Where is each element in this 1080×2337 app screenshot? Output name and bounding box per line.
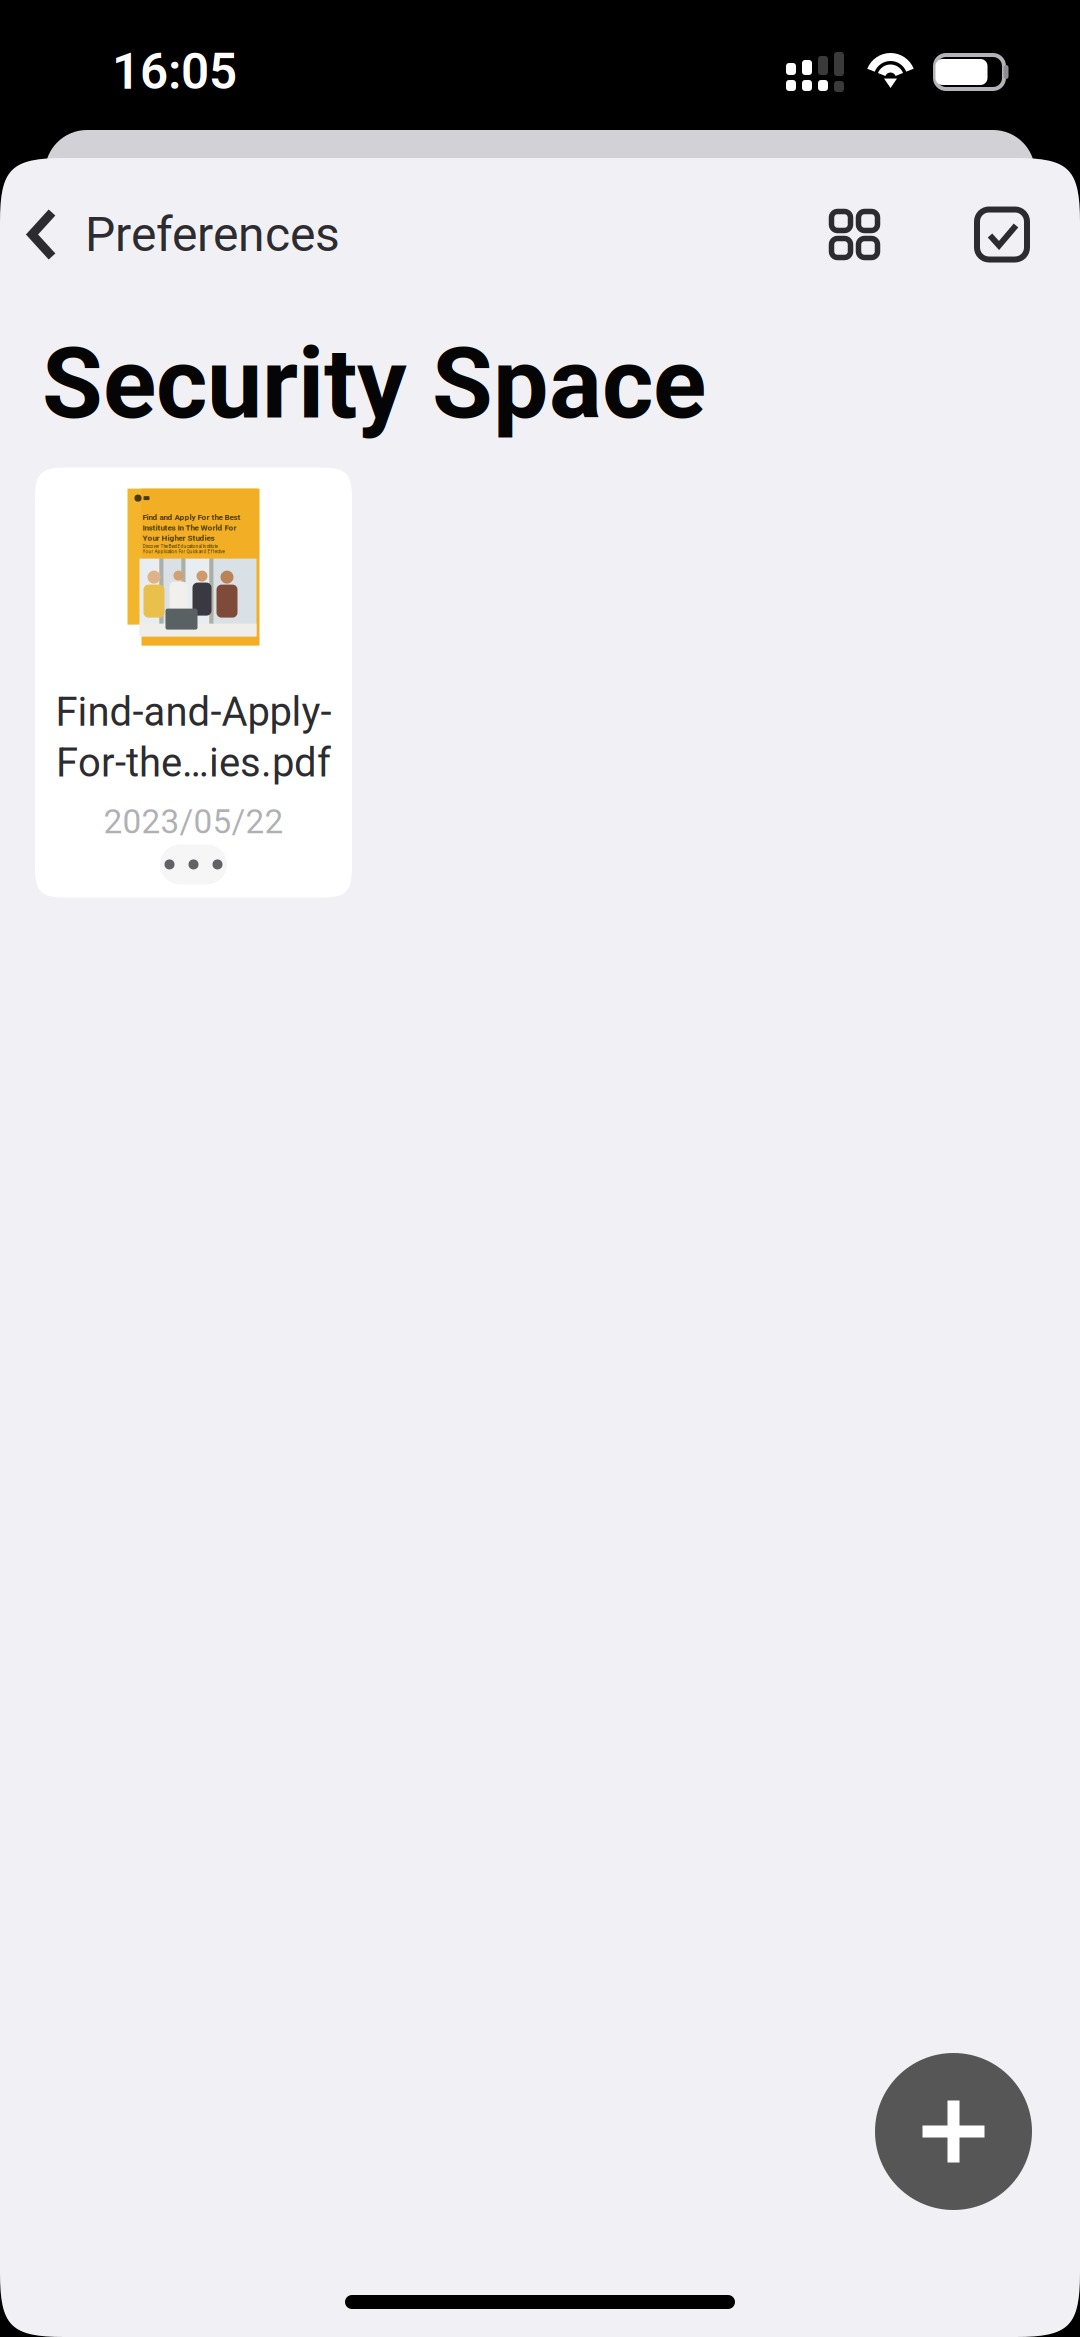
staticText: Find-and-Apply-: [55, 689, 331, 735]
staticText: For-the…ies.pdf: [56, 739, 331, 786]
staticText: Security Space: [42, 326, 706, 442]
button[interactable]: Grid view: [815, 195, 894, 274]
staticText: Institutes In The World For: [142, 523, 236, 532]
button[interactable]: Find and Apply For the Best: [35, 468, 352, 898]
staticText: Find and Apply For the Best: [142, 513, 240, 522]
button[interactable]: Preferences: [0, 194, 352, 275]
button[interactable]: Add file: [875, 2053, 1032, 2210]
button[interactable]: Select items: [961, 193, 1043, 275]
staticText: Your Application For Quick and Effective: [142, 549, 224, 554]
staticText: 16:05: [112, 43, 237, 101]
staticText: Discover The Best Educational Institute: [142, 544, 217, 549]
staticText: Preferences: [85, 206, 340, 263]
staticText: Your Higher Studies: [142, 533, 214, 543]
staticText: 2023/05/22: [103, 802, 283, 841]
